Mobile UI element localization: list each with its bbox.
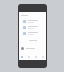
button[interactable] bbox=[19, 12, 46, 18]
button[interactable]: Tab 0 bbox=[19, 54, 25, 60]
button[interactable] bbox=[19, 24, 46, 30]
button[interactable]: Tab 3 bbox=[39, 54, 46, 60]
button[interactable] bbox=[19, 18, 46, 24]
button[interactable]: Tab 2 bbox=[32, 54, 39, 60]
button[interactable] bbox=[19, 45, 46, 51]
button[interactable] bbox=[19, 30, 46, 36]
button[interactable]: Tab 1 bbox=[25, 54, 32, 60]
